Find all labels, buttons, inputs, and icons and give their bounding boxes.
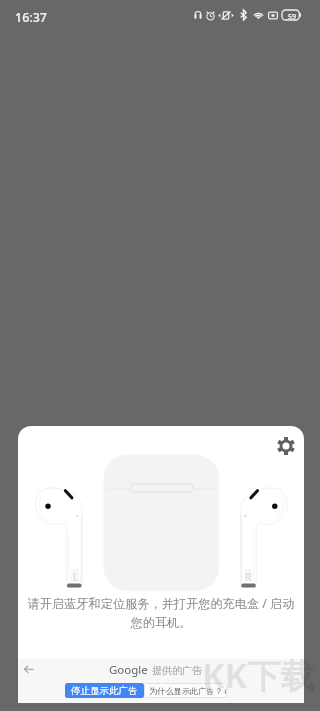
staticText: L (73, 570, 79, 584)
button[interactable]: Settings (270, 430, 302, 462)
staticText: KK下载 (202, 652, 315, 698)
staticText: 提供的广告 (152, 664, 202, 677)
button[interactable]: 为什么显示此广告？ (144, 683, 227, 698)
staticText: 为什么显示此广告？ (149, 686, 223, 696)
button[interactable]: Back (24, 664, 34, 674)
staticText: R (245, 570, 252, 584)
button[interactable]: 停止显示此广告 (65, 683, 144, 698)
staticText: 59 (285, 12, 299, 22)
staticText: 16:37 (15, 9, 48, 26)
staticText: 请开启蓝牙和定位服务，并打开您的充电盒 / 启动 您的耳机。 (18, 595, 304, 631)
staticText: Google (109, 662, 148, 678)
staticText: 停止显示此广告 (71, 685, 138, 697)
